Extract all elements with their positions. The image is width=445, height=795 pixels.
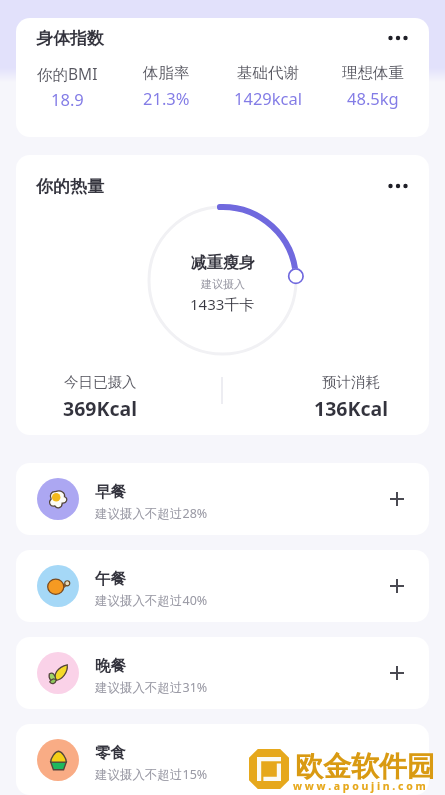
staticText: 预计消耗 (322, 373, 380, 391)
staticText: 建议摄入不超过15% (95, 766, 208, 783)
button[interactable]: Add 午餐 (381, 570, 413, 602)
button[interactable]: 体脂率 (121, 63, 211, 109)
staticText: 136Kcal (314, 395, 388, 422)
button[interactable]: 理想体重 (328, 63, 418, 109)
staticText: 零食 (95, 743, 126, 763)
staticText: 早餐 (95, 482, 126, 502)
button[interactable]: Add 晚餐 (381, 657, 413, 689)
button[interactable]: Add 零食 (381, 744, 413, 776)
button[interactable]: 你的BMI (22, 63, 112, 110)
button[interactable]: 早餐 (16, 463, 429, 535)
staticText: 体脂率 (143, 63, 190, 83)
button[interactable]: 午餐 (16, 550, 429, 622)
button[interactable]: 预计消耗 (286, 373, 416, 422)
button[interactable]: 今日已摄入 (35, 373, 165, 422)
staticText: 基础代谢 (237, 63, 299, 83)
staticText: 1433千卡 (190, 294, 255, 314)
staticText: 21.3% (143, 87, 190, 109)
staticText: w w w . a p o u j i n . c o m (293, 779, 426, 793)
staticText: 48.5kg (347, 87, 399, 109)
staticText: 今日已摄入 (64, 373, 137, 391)
staticText: 你的BMI (37, 63, 98, 84)
button[interactable]: 零食 (16, 724, 429, 795)
staticText: 欧金软件园 (295, 749, 435, 784)
staticText: 减重瘦身 (191, 253, 255, 273)
button[interactable]: More options (381, 21, 415, 55)
staticText: 18.9 (51, 88, 84, 110)
staticText: 369Kcal (63, 395, 137, 422)
staticText: 你的热量 (36, 176, 104, 197)
staticText: 1429kcal (234, 87, 302, 109)
staticText: 建议摄入不超过28% (95, 505, 208, 522)
staticText: 建议摄入不超过40% (95, 592, 208, 609)
button[interactable]: Add 早餐 (381, 483, 413, 515)
staticText: 晚餐 (95, 656, 126, 676)
staticText: 午餐 (95, 569, 126, 589)
staticText: 建议摄入不超过31% (95, 679, 208, 696)
staticText: 身体指数 (36, 28, 104, 49)
staticText: 建议摄入 (201, 277, 245, 291)
button[interactable]: More options (381, 169, 415, 203)
staticText: 理想体重 (342, 63, 404, 83)
button[interactable]: 基础代谢 (223, 63, 313, 109)
button[interactable]: 晚餐 (16, 637, 429, 709)
